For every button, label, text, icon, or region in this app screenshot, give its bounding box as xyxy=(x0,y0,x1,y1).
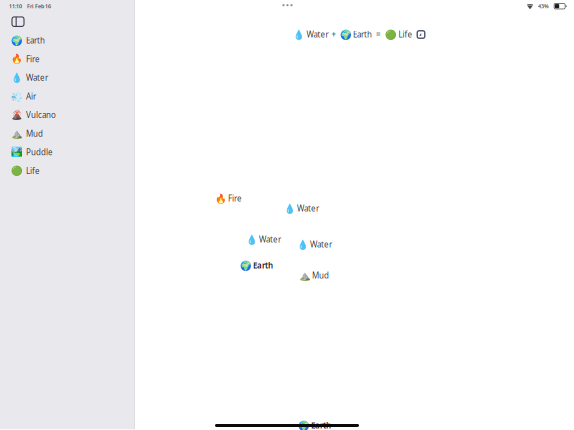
staticText: Earth xyxy=(311,420,331,430)
button[interactable]: Fire xyxy=(0,50,135,68)
staticText: 🏞️ xyxy=(11,147,23,158)
staticText: 🌍 xyxy=(240,260,252,271)
staticText: 43% xyxy=(538,3,549,10)
staticText: Water xyxy=(310,239,332,250)
staticText: Life xyxy=(26,166,40,176)
staticText: 11:10 xyxy=(9,3,22,10)
button[interactable]: Earth xyxy=(240,260,273,271)
button[interactable]: Earth xyxy=(0,31,135,50)
button[interactable]: Water xyxy=(0,68,135,87)
staticText: 🔥 xyxy=(11,54,23,64)
staticText: 🟢 xyxy=(385,29,397,40)
staticText: Earth xyxy=(253,260,273,271)
button[interactable]: Air xyxy=(0,87,135,106)
staticText: 🌍 xyxy=(339,29,351,40)
staticText: Vulcano xyxy=(26,110,56,120)
button[interactable]: Life xyxy=(0,162,135,180)
staticText: 🌋 xyxy=(11,110,23,120)
staticText: Water xyxy=(297,203,319,214)
button[interactable]: Water xyxy=(284,203,319,214)
staticText: ⛰️ xyxy=(11,128,23,139)
staticText: 💧 xyxy=(284,203,296,214)
button[interactable]: Earth xyxy=(298,420,331,430)
staticText: 💨 xyxy=(11,91,23,102)
button[interactable]: Toggle Sidebar xyxy=(0,13,135,30)
staticText: = xyxy=(376,29,381,40)
staticText: 💧 xyxy=(11,72,23,83)
staticText: 💧 xyxy=(246,234,258,245)
button[interactable]: Multitasking Controls xyxy=(272,0,302,11)
button[interactable]: Water xyxy=(297,239,332,250)
staticText: Fire xyxy=(228,193,242,204)
staticText: Puddle xyxy=(26,147,53,158)
staticText: + xyxy=(331,29,336,40)
staticText: Mud xyxy=(26,128,43,139)
staticText: ⛰️ xyxy=(299,270,311,281)
staticText: Fire xyxy=(26,54,40,64)
button[interactable]: Vulcano xyxy=(0,106,135,124)
staticText: 🌍 xyxy=(11,35,23,46)
staticText: 💧 xyxy=(293,29,305,40)
button[interactable]: Add Life to sidebar xyxy=(412,30,425,39)
staticText: Water xyxy=(306,29,328,40)
staticText: 💧 xyxy=(297,239,309,250)
staticText: Water xyxy=(259,234,281,245)
staticText: Life xyxy=(398,29,412,40)
button[interactable]: Mud xyxy=(299,270,329,281)
staticText: Air xyxy=(26,91,36,102)
staticText: 🟢 xyxy=(11,166,23,176)
staticText: Fri Feb 16 xyxy=(27,3,51,10)
staticText: Earth xyxy=(26,35,45,46)
staticText: Mud xyxy=(312,270,329,281)
staticText: 🔥 xyxy=(215,193,227,204)
staticText: Earth xyxy=(353,29,372,40)
button[interactable]: Mud xyxy=(0,124,135,143)
staticText: Water xyxy=(26,72,48,83)
button[interactable]: Puddle xyxy=(0,143,135,161)
button[interactable]: Fire xyxy=(215,193,242,204)
staticText: 🌍 xyxy=(298,420,310,430)
button[interactable]: Water xyxy=(246,234,281,245)
